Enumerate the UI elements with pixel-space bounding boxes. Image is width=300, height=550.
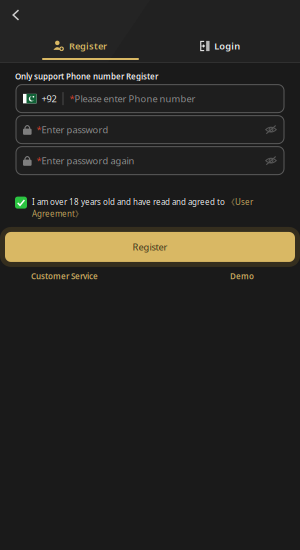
staticText: 《User — [227, 197, 253, 207]
button[interactable]: Register — [14, 37, 146, 55]
button[interactable]: Register — [0, 227, 300, 267]
staticText: Register — [132, 241, 167, 253]
button[interactable]: Back — [3, 3, 29, 27]
staticText: Enter password — [42, 123, 109, 136]
staticText: * — [37, 154, 42, 167]
staticText: * — [69, 92, 74, 105]
button[interactable]: Show password — [265, 124, 277, 135]
staticText: Please enter Phone number — [74, 92, 195, 105]
staticText: +92 — [41, 92, 56, 105]
button[interactable]: Show password again — [265, 155, 277, 166]
button[interactable]: Login — [154, 37, 286, 55]
staticText: Demo — [230, 271, 254, 282]
staticText: Agreement》 — [32, 208, 83, 219]
staticText: Customer Service — [31, 271, 98, 282]
button[interactable]: Demo — [230, 271, 254, 282]
staticText: I am over 18 years old and have read and… — [32, 197, 227, 207]
staticText: Enter password again — [42, 154, 135, 167]
staticText: * — [37, 123, 42, 136]
button[interactable]: Customer Service — [31, 271, 98, 282]
staticText: Register — [69, 40, 107, 52]
staticText: Login — [214, 40, 240, 52]
button[interactable]: I am over 18 years old and have read and… — [0, 197, 300, 219]
staticText: Only support Phone number Register — [15, 71, 158, 82]
